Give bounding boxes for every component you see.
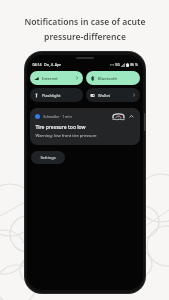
staticText: 04:14 bbox=[32, 62, 42, 67]
button[interactable]: Collapse bbox=[128, 113, 135, 120]
button[interactable]: Settings bbox=[31, 151, 65, 164]
other: Tire pressure bbox=[112, 112, 125, 120]
button[interactable]: Schwalbe · 1 min bbox=[30, 108, 140, 145]
button[interactable]: Bluetooth bbox=[86, 71, 140, 85]
staticText: Schwalbe · 1 min bbox=[43, 114, 72, 119]
staticText: Tire pressure too low bbox=[35, 124, 86, 131]
button[interactable]: Wallet bbox=[86, 88, 140, 102]
staticText: Flashlight bbox=[42, 93, 61, 98]
staticText: Wallet bbox=[98, 93, 110, 98]
staticText: Internet bbox=[42, 76, 58, 81]
button[interactable]: Internet bbox=[30, 71, 83, 85]
staticText: 5G bbox=[115, 62, 120, 67]
staticText: Settings bbox=[40, 155, 56, 160]
staticText: Bluetooth bbox=[98, 76, 117, 81]
button[interactable]: Flashlight bbox=[30, 88, 83, 102]
staticText: Notifications in case of acute bbox=[24, 16, 146, 28]
staticText: Warning: low front tire pressure bbox=[35, 133, 97, 139]
staticText: 86 % bbox=[130, 62, 138, 67]
staticText: pressure-difference bbox=[44, 31, 126, 43]
staticText: Do, 4. Apr bbox=[44, 62, 61, 67]
